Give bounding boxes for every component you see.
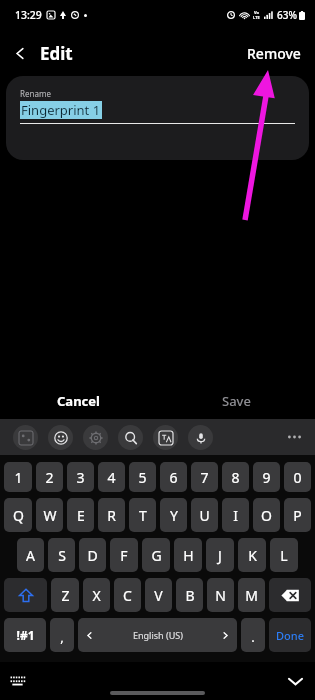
button[interactable]: F: [110, 538, 138, 572]
staticText: 3: [76, 468, 85, 487]
button[interactable]: A: [17, 538, 44, 572]
button[interactable]: P: [284, 498, 311, 532]
staticText: 8: [231, 468, 240, 487]
button[interactable]: X: [83, 578, 110, 612]
button[interactable]: 6: [160, 462, 187, 492]
staticText: R: [107, 506, 116, 525]
button[interactable]: !#1: [4, 618, 46, 652]
staticText: O: [261, 506, 272, 525]
button[interactable]: W: [36, 498, 63, 532]
button[interactable]: K: [238, 538, 266, 572]
button[interactable]: H: [174, 538, 202, 572]
button[interactable]: J: [206, 538, 234, 572]
button[interactable]: Shift: [4, 578, 47, 612]
staticText: G: [151, 546, 162, 565]
button[interactable]: Emoji: [48, 425, 73, 450]
staticText: W: [43, 506, 57, 525]
button[interactable]: Search: [118, 425, 143, 450]
staticText: Edit: [40, 42, 73, 65]
staticText: LTE: [253, 15, 260, 20]
staticText: Vo: [254, 10, 260, 15]
staticText: Fingerprint 1: [21, 101, 101, 119]
button[interactable]: English (US): [78, 618, 237, 652]
staticText: L: [280, 546, 288, 565]
button[interactable]: R: [98, 498, 125, 532]
staticText: K: [248, 546, 257, 565]
staticText: U: [199, 506, 210, 525]
button[interactable]: ,: [50, 618, 74, 652]
button[interactable]: V: [145, 578, 172, 612]
button[interactable]: U: [191, 498, 218, 532]
staticText: E: [77, 506, 85, 525]
button[interactable]: Done: [269, 618, 311, 652]
staticText: 63%: [277, 8, 297, 22]
button[interactable]: 1: [4, 462, 32, 492]
button[interactable]: 2: [36, 462, 63, 492]
button[interactable]: 5: [129, 462, 156, 492]
button[interactable]: 0: [284, 462, 311, 492]
staticText: Cancel: [57, 392, 100, 410]
staticText: H: [183, 546, 194, 565]
button[interactable]: Voice input: [188, 425, 213, 450]
staticText: P: [293, 506, 302, 525]
staticText: 2: [45, 468, 54, 487]
button[interactable]: 3: [67, 462, 94, 492]
button[interactable]: Back: [0, 33, 40, 73]
button[interactable]: Save: [157, 383, 315, 419]
button[interactable]: Q: [4, 498, 32, 532]
button[interactable]: Settings: [83, 425, 108, 450]
button[interactable]: Cancel: [0, 383, 157, 419]
staticText: .: [251, 628, 255, 646]
staticText: Rename: [20, 88, 51, 99]
button[interactable]: C: [114, 578, 141, 612]
staticText: J: [218, 546, 222, 565]
button[interactable]: S: [48, 538, 75, 572]
button[interactable]: E: [67, 498, 94, 532]
button[interactable]: O: [253, 498, 280, 532]
staticText: I: [233, 506, 238, 525]
staticText: 1: [14, 468, 23, 487]
button[interactable]: 7: [191, 462, 218, 492]
staticText: D: [87, 546, 98, 565]
staticText: Save: [222, 392, 251, 410]
staticText: C: [123, 586, 132, 605]
button[interactable]: 8: [222, 462, 249, 492]
staticText: B: [185, 586, 195, 605]
staticText: V: [154, 586, 163, 605]
button[interactable]: M: [238, 578, 265, 612]
button[interactable]: D: [79, 538, 106, 572]
button[interactable]: I: [222, 498, 249, 532]
staticText: Remove: [247, 44, 301, 63]
staticText: 9: [262, 468, 271, 487]
button[interactable]: Remove: [233, 36, 315, 71]
button[interactable]: Rename: [6, 76, 309, 160]
staticText: !#1: [16, 627, 35, 643]
staticText: ,: [60, 628, 64, 646]
staticText: 13:29: [15, 8, 42, 22]
button[interactable]: 4: [98, 462, 125, 492]
staticText: X: [92, 586, 101, 605]
button[interactable]: Hide keyboard: [281, 667, 309, 695]
button[interactable]: Z: [51, 578, 79, 612]
staticText: 0: [293, 468, 302, 487]
button[interactable]: T: [129, 498, 156, 532]
button[interactable]: Y: [160, 498, 187, 532]
button[interactable]: .: [241, 618, 265, 652]
button[interactable]: Backspace: [269, 578, 311, 612]
staticText: M: [245, 586, 258, 605]
button[interactable]: Clipboard: [13, 425, 38, 450]
staticText: Q: [13, 506, 24, 525]
staticText: 4: [107, 468, 116, 487]
staticText: 5: [138, 468, 147, 487]
button[interactable]: N: [207, 578, 234, 612]
staticText: Y: [170, 506, 178, 525]
button[interactable]: G: [142, 538, 170, 572]
button[interactable]: L: [270, 538, 298, 572]
staticText: T: [139, 506, 147, 525]
button[interactable]: More options: [279, 422, 309, 452]
staticText: S: [58, 546, 66, 565]
button[interactable]: 9: [253, 462, 280, 492]
button[interactable]: Translate: [153, 425, 178, 450]
button[interactable]: B: [176, 578, 203, 612]
button[interactable]: Switch keyboard: [4, 667, 32, 695]
